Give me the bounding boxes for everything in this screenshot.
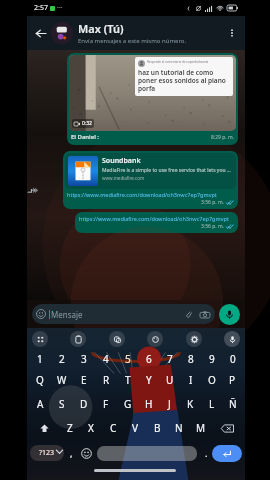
- staticText: S: [59, 397, 65, 411]
- button[interactable]: Max (Tú): [78, 21, 223, 45]
- button[interactable]: H: [138, 392, 159, 416]
- button[interactable]: 7: [159, 350, 180, 368]
- staticText: V: [132, 421, 138, 435]
- button[interactable]: Apps: [32, 331, 48, 347]
- staticText: W: [57, 373, 67, 387]
- button[interactable]: 9: [201, 350, 222, 368]
- button[interactable]: K: [180, 392, 201, 416]
- button[interactable]: Space: [97, 446, 197, 461]
- button[interactable]: Hide keyboard: [52, 444, 66, 458]
- staticText: K: [187, 397, 194, 411]
- staticText: O: [208, 373, 216, 387]
- staticText: 9: [209, 352, 215, 366]
- button[interactable]: W: [51, 368, 73, 392]
- button[interactable]: Shift: [29, 416, 59, 440]
- button[interactable]: 5: [117, 350, 138, 368]
- staticText: ···: [57, 3, 63, 13]
- button[interactable]: 1: [29, 350, 51, 368]
- staticText: B: [154, 421, 161, 435]
- button[interactable]: N: [168, 416, 190, 440]
- staticText: Z: [67, 421, 73, 435]
- staticText: A: [37, 397, 44, 411]
- staticText: .: [205, 447, 208, 459]
- button[interactable]: D: [73, 392, 95, 416]
- button[interactable]: X: [80, 416, 102, 440]
- button[interactable]: Mensaje: [32, 304, 215, 324]
- staticText: X: [88, 421, 94, 435]
- button[interactable]: J: [159, 392, 180, 416]
- staticText: C: [110, 421, 117, 435]
- button[interactable]: Backspace: [212, 416, 243, 440]
- button[interactable]: E: [73, 368, 95, 392]
- button[interactable]: G: [117, 392, 138, 416]
- button[interactable]: More options: [223, 24, 241, 42]
- button[interactable]: 3: [73, 350, 95, 368]
- button[interactable]: F: [95, 392, 117, 416]
- staticText: D: [80, 397, 88, 411]
- button[interactable]: Ñ: [222, 392, 243, 416]
- button[interactable]: U: [159, 368, 180, 392]
- button[interactable]: Camera: [198, 308, 211, 321]
- staticText: P: [229, 373, 236, 387]
- button[interactable]: Attach: [182, 308, 195, 321]
- button[interactable]: https://www.mediafire.com/download/oh3nw…: [75, 212, 238, 233]
- staticText: Soundbank: [102, 156, 141, 166]
- staticText: Y: [146, 373, 152, 387]
- button[interactable]: S: [51, 392, 73, 416]
- button[interactable]: R: [95, 368, 117, 392]
- button[interactable]: .: [200, 440, 212, 466]
- button[interactable]: Emoji: [78, 445, 94, 461]
- staticText: M: [196, 421, 206, 435]
- button[interactable]: Y: [138, 368, 159, 392]
- staticText: 6: [146, 352, 152, 366]
- button[interactable]: ,: [64, 440, 78, 466]
- staticText: I: [189, 373, 193, 387]
- staticText: L: [209, 397, 215, 411]
- staticText: 7: [167, 352, 173, 366]
- button[interactable]: Back: [31, 24, 49, 42]
- button[interactable]: O: [201, 368, 222, 392]
- button[interactable]: Z: [59, 416, 80, 440]
- staticText: Envía mensajes a este mismo número.: [78, 37, 187, 45]
- button[interactable]: Settings: [186, 331, 202, 347]
- button[interactable]: Enter: [212, 445, 242, 462]
- button[interactable]: Themes: [147, 331, 163, 347]
- button[interactable]: Stickers: [109, 331, 125, 347]
- staticText: ?123: [39, 448, 55, 458]
- button[interactable]: L: [201, 392, 222, 416]
- button[interactable]: 4: [95, 350, 117, 368]
- staticText: J: [168, 397, 171, 411]
- staticText: H: [145, 397, 153, 411]
- button[interactable]: Q: [29, 368, 51, 392]
- button[interactable]: Profile photo: [51, 22, 73, 44]
- button[interactable]: Voice input: [224, 331, 240, 347]
- staticText: U: [166, 373, 174, 387]
- button[interactable]: Responde al comentario de superdarksonía: [67, 53, 238, 145]
- staticText: T: [125, 373, 131, 387]
- button[interactable]: T: [117, 368, 138, 392]
- button[interactable]: Clipboard: [70, 331, 86, 347]
- staticText: 8: [188, 352, 194, 366]
- staticText: ,: [70, 447, 73, 459]
- staticText: 1: [37, 352, 43, 366]
- staticText: 5: [125, 352, 131, 366]
- button[interactable]: 6: [138, 350, 159, 368]
- staticText: El Daniel :: [71, 133, 99, 141]
- staticText: Mensaje: [51, 309, 83, 320]
- button[interactable]: C: [102, 416, 124, 440]
- button[interactable]: P: [222, 368, 243, 392]
- button[interactable]: M: [190, 416, 212, 440]
- button[interactable]: 8: [180, 350, 201, 368]
- button[interactable]: Voice message: [219, 304, 240, 325]
- button[interactable]: V: [124, 416, 146, 440]
- button[interactable]: ?123: [30, 445, 64, 461]
- button[interactable]: Soundbank: [63, 151, 238, 209]
- button[interactable]: A: [29, 392, 51, 416]
- button[interactable]: 2: [51, 350, 73, 368]
- staticText: 3:56 p. m.: [201, 199, 224, 206]
- staticText: haz un tutorial de como poner esos sonid…: [138, 68, 230, 93]
- staticText: F: [103, 397, 109, 411]
- button[interactable]: B: [146, 416, 168, 440]
- button[interactable]: I: [180, 368, 201, 392]
- button[interactable]: 0: [222, 350, 243, 368]
